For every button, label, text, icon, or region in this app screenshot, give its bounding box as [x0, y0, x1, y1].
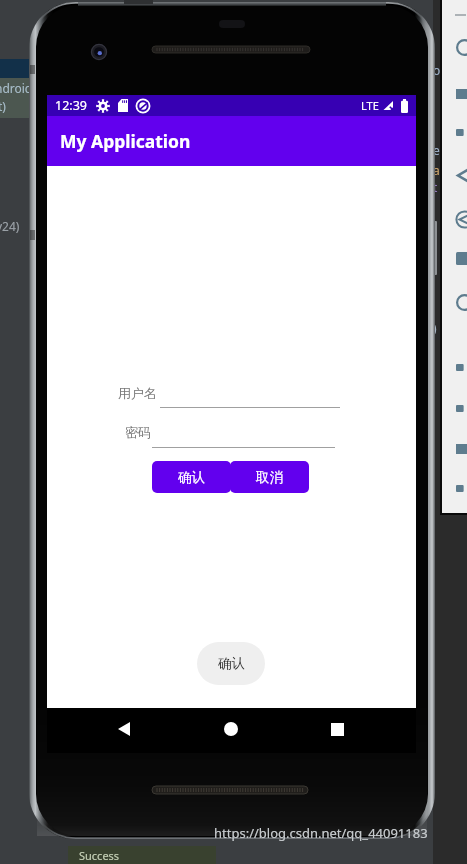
- staticText: a: [433, 162, 440, 178]
- staticText: e: [433, 142, 440, 158]
- button[interactable]: Tool window icon: [456, 39, 467, 56]
- button[interactable]: 确认: [197, 642, 265, 685]
- button[interactable]: Tool window icon: [456, 86, 467, 103]
- button[interactable]: Tool window icon: [456, 294, 467, 311]
- button[interactable]: Recent apps: [323, 715, 351, 743]
- button[interactable]: Tool window icon: [456, 167, 467, 184]
- staticText: Success: [79, 848, 120, 863]
- button[interactable]: Home: [217, 715, 245, 743]
- button[interactable]: Back: [110, 715, 138, 743]
- button[interactable]: My Application: [47, 116, 416, 166]
- staticText: LTE: [361, 98, 379, 113]
- staticText: ): [433, 320, 437, 336]
- staticText: ndroid: [0, 80, 33, 96]
- staticText: 密码: [125, 424, 151, 440]
- staticText: My Application: [60, 129, 191, 153]
- staticText: t: [433, 179, 438, 195]
- button[interactable]: Tool window icon: [456, 211, 467, 228]
- button[interactable]: Tool window icon: [456, 359, 467, 376]
- button[interactable]: 取消: [230, 461, 309, 493]
- staticText: 12:39: [55, 97, 87, 114]
- button[interactable]: Tool window icon: [456, 441, 467, 458]
- staticText: 取消: [256, 469, 283, 486]
- staticText: t): [0, 98, 6, 114]
- staticText: 用户名: [118, 385, 157, 401]
- staticText: 确认: [218, 655, 245, 672]
- staticText: o: [433, 62, 441, 78]
- staticText: v24): [0, 218, 20, 234]
- button[interactable]: Tool window icon: [456, 400, 467, 417]
- button[interactable]: Tool window icon: [456, 480, 467, 497]
- staticText: 确认: [178, 469, 205, 486]
- button[interactable]: Tool window icon: [456, 250, 467, 267]
- button[interactable]: Tool window icon: [456, 124, 467, 141]
- staticText: https://blog.csdn.net/qq_44091183: [214, 824, 428, 842]
- button[interactable]: 确认: [152, 461, 231, 493]
